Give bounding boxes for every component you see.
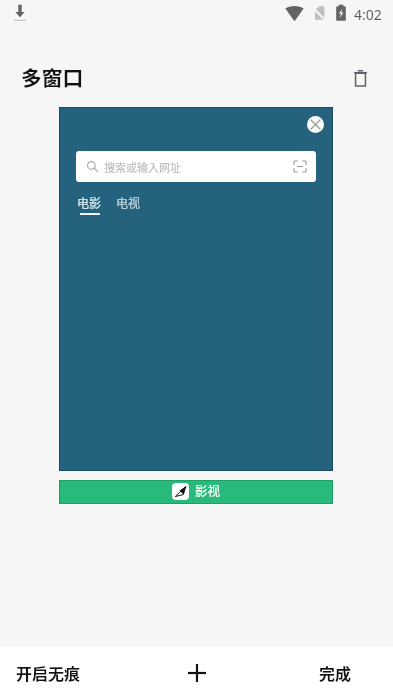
button[interactable]: Delete all windows [346, 64, 374, 92]
staticText: 完成 [319, 661, 352, 684]
button[interactable]: 完成 [262, 647, 393, 698]
button[interactable]: New window [131, 647, 262, 698]
button[interactable]: 影视 [59, 480, 333, 504]
staticText: 开启无痕 [16, 661, 81, 684]
button[interactable]: Close window [307, 116, 324, 133]
button[interactable]: 搜索或输入网址 [59, 107, 333, 471]
button[interactable]: 电视 [116, 194, 141, 211]
staticText: 4:02 [354, 5, 382, 24]
button[interactable]: 开启无痕 [0, 647, 131, 698]
button[interactable]: 电影 [77, 194, 102, 211]
staticText: 多窗口 [21, 62, 84, 92]
staticText: 影视 [195, 481, 221, 499]
button[interactable]: 搜索或输入网址 [76, 151, 316, 182]
staticText: 搜索或输入网址 [104, 159, 181, 175]
